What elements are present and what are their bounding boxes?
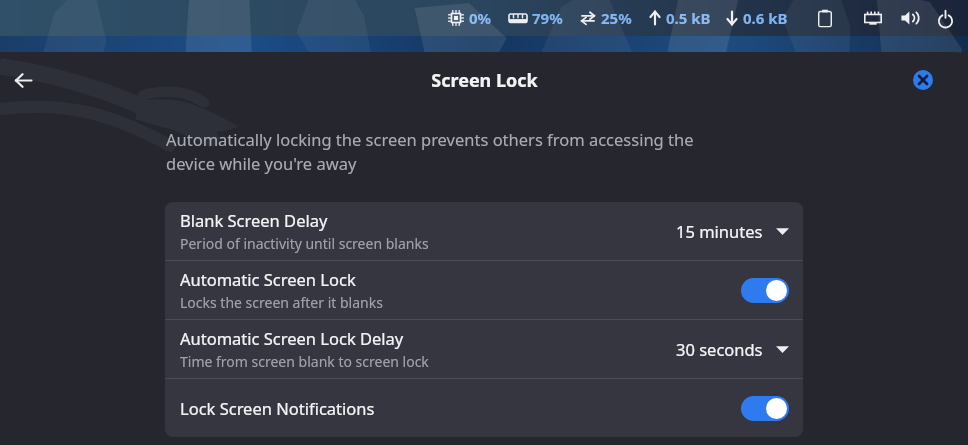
staticText: 30 seconds xyxy=(676,338,763,360)
button[interactable]: Toggle on xyxy=(741,278,789,303)
staticText: Automatically locking the screen prevent… xyxy=(166,128,694,175)
button[interactable]: Automatic Screen Lock xyxy=(165,261,803,319)
button[interactable]: 30 seconds xyxy=(676,338,789,360)
button[interactable]: Clipboard xyxy=(814,7,836,29)
button[interactable]: Toggle on xyxy=(741,396,789,421)
button[interactable]: Lock Screen Notifications xyxy=(165,379,803,437)
button[interactable]: Volume xyxy=(898,7,920,29)
staticText: Blank Screen Delay xyxy=(180,209,328,231)
button[interactable]: Automatic Screen Lock Delay xyxy=(165,320,803,378)
staticText: 15 minutes xyxy=(676,220,763,242)
staticText: Automatic Screen Lock xyxy=(180,268,356,290)
staticText: Lock Screen Notifications xyxy=(180,397,375,419)
staticText: 0% xyxy=(469,8,492,28)
staticText: Automatic Screen Lock Delay xyxy=(180,327,404,349)
button[interactable]: Back xyxy=(8,65,38,95)
button[interactable]: Network xyxy=(862,7,884,29)
staticText: 0.5 kB xyxy=(666,8,711,28)
staticText: 79% xyxy=(532,8,563,28)
staticText: Locks the screen after it blanks xyxy=(180,293,383,312)
button[interactable]: Power xyxy=(934,7,956,29)
button[interactable]: Close xyxy=(910,67,936,93)
staticText: 0.6 kB xyxy=(743,8,788,28)
button[interactable]: 15 minutes xyxy=(676,220,789,242)
staticText: 25% xyxy=(601,8,632,28)
button[interactable]: Blank Screen Delay xyxy=(165,202,803,260)
staticText: Period of inactivity until screen blanks xyxy=(180,234,429,253)
staticText: Screen Lock xyxy=(431,68,538,93)
staticText: Time from screen blank to screen lock xyxy=(180,352,429,371)
